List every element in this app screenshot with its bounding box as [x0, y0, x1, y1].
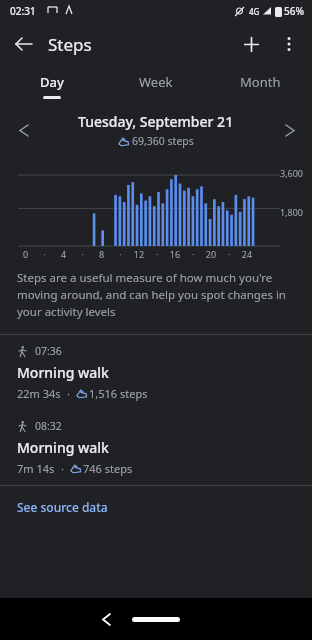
staticText: 7m 14s [17, 461, 55, 476]
staticText: 4G [249, 6, 260, 17]
staticText: · [220, 248, 238, 260]
staticText: Steps [48, 33, 92, 56]
button[interactable]: Home [126, 610, 186, 628]
button[interactable]: Week [104, 66, 208, 106]
staticText: See source data [17, 499, 108, 515]
staticText: 1,516 steps [89, 386, 148, 401]
button[interactable]: 08:32 [0, 410, 312, 485]
staticText: 20 [202, 248, 220, 260]
staticText: 8 [92, 248, 111, 260]
staticText: · [67, 386, 70, 401]
button[interactable]: Month [208, 66, 312, 106]
staticText: Morning walk [17, 363, 109, 382]
staticText: 22m 34s [17, 386, 61, 401]
staticText: 0 [16, 248, 35, 260]
staticText: · [111, 248, 130, 260]
staticText: 08:32 [35, 419, 62, 433]
staticText: · [61, 461, 64, 476]
button[interactable]: 07:36 [0, 335, 312, 410]
staticText: 12 [130, 248, 148, 260]
button[interactable]: Day [0, 66, 104, 106]
button[interactable]: Back [6, 26, 42, 62]
staticText: Tuesday, September 21 [78, 112, 234, 131]
staticText: Week [139, 73, 173, 91]
staticText: 1,800 [280, 206, 304, 218]
staticText: · [148, 248, 166, 260]
staticText: · [35, 248, 54, 260]
button[interactable]: See source data [0, 486, 312, 528]
staticText: 16 [166, 248, 184, 260]
staticText: Morning walk [17, 438, 109, 457]
staticText: Day [40, 73, 64, 91]
staticText: 56% [284, 4, 304, 18]
staticText: 02:31 [10, 4, 36, 18]
staticText: Steps are a useful measure of how much y… [17, 270, 295, 320]
staticText: · [73, 248, 92, 260]
button[interactable]: Previous day [8, 115, 38, 145]
button[interactable]: More options [270, 25, 308, 63]
staticText: 3,600 [280, 167, 304, 179]
staticText: 69,360 steps [132, 134, 194, 148]
button[interactable]: Next day [274, 115, 304, 145]
button[interactable]: Add [232, 25, 270, 63]
staticText: 24 [238, 248, 256, 260]
staticText: 4 [54, 248, 73, 260]
staticText: Month [240, 73, 281, 91]
staticText: 07:36 [35, 344, 62, 358]
button[interactable]: Back [89, 602, 123, 636]
staticText: · [184, 248, 202, 260]
staticText: 746 steps [83, 461, 133, 476]
